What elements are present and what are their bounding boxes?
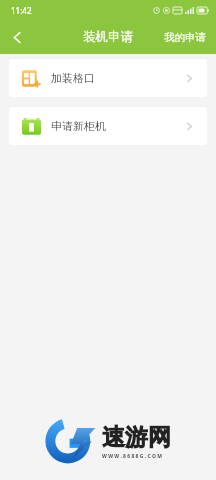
staticText: 装机申请 (83, 29, 133, 45)
button[interactable]: 申请新柜机 (9, 107, 207, 145)
button[interactable]: 我的申请 (154, 20, 216, 54)
button[interactable]: Back (0, 20, 34, 54)
staticText: 申请新柜机 (51, 119, 106, 133)
staticText: 我的申请 (164, 31, 206, 44)
staticText: 加装格口 (51, 71, 95, 85)
staticText: 速游网 (102, 423, 171, 452)
staticText: W W W . 8 6 8 8 G . C O M (102, 453, 162, 460)
button[interactable]: 加装格口 (9, 59, 207, 97)
staticText: 11:42 (11, 5, 32, 16)
